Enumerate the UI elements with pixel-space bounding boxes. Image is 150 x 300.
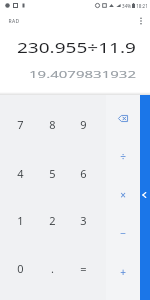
button[interactable]: − [108, 214, 138, 252]
button[interactable]: 3 [67, 196, 99, 244]
button[interactable]: 4 [4, 149, 36, 197]
button[interactable]: RAD [6, 16, 22, 26]
button[interactable]: 2 [36, 196, 68, 244]
button[interactable]: More options [134, 13, 148, 29]
staticText: 7 [17, 117, 24, 132]
staticText: 19.4079831932 [29, 70, 136, 80]
staticText: 1 [17, 213, 24, 228]
staticText: × [120, 188, 126, 202]
staticText: 230.955÷11.9 [17, 38, 136, 55]
staticText: 34% [122, 3, 131, 9]
button[interactable]: Open history panel [140, 95, 150, 300]
button[interactable]: × [108, 176, 138, 214]
button[interactable]: . [36, 244, 68, 292]
button[interactable]: 1 [4, 196, 36, 244]
button[interactable]: 9 [67, 100, 99, 148]
staticText: + [120, 265, 126, 279]
staticText: RAD [8, 18, 20, 25]
staticText: 2 [49, 213, 56, 228]
staticText: . [51, 261, 54, 276]
button[interactable]: ÷ [108, 138, 138, 176]
button[interactable]: 6 [67, 149, 99, 197]
button[interactable]: 7 [4, 100, 36, 148]
staticText: 3 [80, 213, 87, 228]
staticText: − [120, 226, 126, 240]
staticText: 0 [17, 261, 24, 276]
staticText: 9 [80, 117, 87, 132]
button[interactable]: 8 [36, 100, 68, 148]
staticText: 4 [17, 166, 24, 181]
button[interactable]: 5 [36, 149, 68, 197]
staticText: ÷ [120, 150, 126, 164]
button[interactable]: + [108, 253, 138, 291]
staticText: = [80, 261, 87, 276]
staticText: 8 [49, 117, 56, 132]
staticText: 5 [49, 166, 56, 181]
button[interactable]: Backspace [108, 99, 138, 137]
button[interactable]: = [67, 244, 99, 292]
staticText: 18:21 [136, 3, 148, 9]
button[interactable]: 0 [4, 244, 36, 292]
staticText: 6 [80, 166, 87, 181]
